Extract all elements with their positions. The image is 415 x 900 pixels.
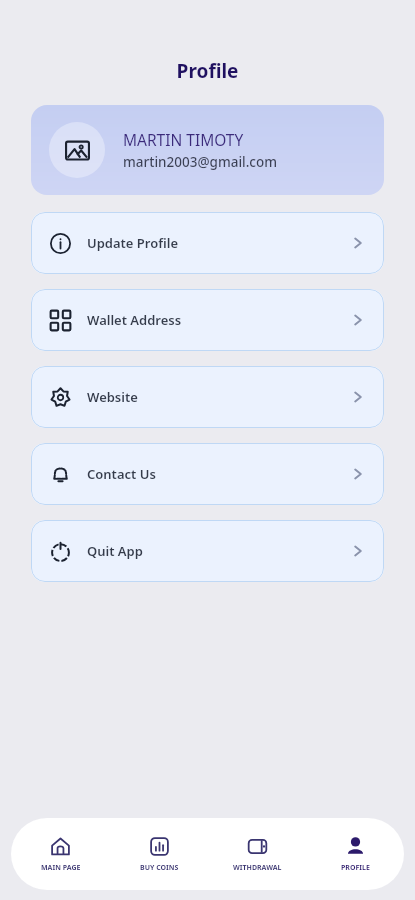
button[interactable]: BUY COINS: [110, 818, 208, 890]
staticText: Website: [87, 388, 351, 406]
staticText: martin2003@gmail.com: [123, 153, 278, 171]
button[interactable]: Update Profile: [31, 212, 384, 274]
staticText: Update Profile: [87, 234, 351, 252]
button[interactable]: Contact Us: [31, 443, 384, 505]
staticText: MARTIN TIMOTY: [123, 129, 244, 150]
staticText: MAIN PAGE: [41, 863, 81, 873]
button[interactable]: Quit App: [31, 520, 384, 582]
staticText: WITHDRAWAL: [233, 863, 282, 873]
button[interactable]: WITHDRAWAL: [208, 818, 306, 890]
staticText: Wallet Address: [87, 311, 351, 329]
staticText: BUY COINS: [140, 863, 179, 873]
button[interactable]: Website: [31, 366, 384, 428]
button[interactable]: Wallet Address: [31, 289, 384, 351]
staticText: Profile: [0, 58, 415, 84]
button[interactable]: PROFILE: [306, 818, 404, 890]
staticText: PROFILE: [341, 863, 370, 873]
staticText: Contact Us: [87, 465, 351, 483]
button[interactable]: MARTIN TIMOTY: [31, 105, 384, 195]
button[interactable]: MAIN PAGE: [11, 818, 110, 890]
staticText: Quit App: [87, 542, 351, 560]
